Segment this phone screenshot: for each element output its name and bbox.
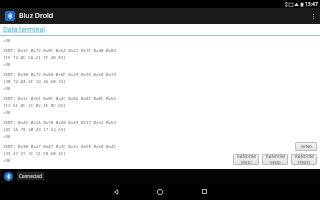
staticText: Connected (19, 173, 42, 179)
staticText: SENT: 0x30 0x72 0x04 0x6F 0x19 0x36 0x60… (3, 72, 117, 78)
staticText: [30 72 04 6F 19 36 60 73] (3, 79, 66, 85)
staticText: (TEXT) (298, 160, 311, 165)
staticText: =OK (3, 110, 11, 116)
staticText: SENT: 0x11 0x61 0x0C 0x2C 0x02 0x4F 0x0C… (3, 96, 117, 102)
staticText: [1F 72 0C 5A 21 7F 4B 03] (3, 55, 66, 61)
staticText: [11 61 0C 2C 02 4F 0C 65] (3, 103, 66, 109)
staticText: =OK (3, 134, 11, 140)
staticText: =OK (3, 158, 11, 164)
button[interactable]: Home (148, 183, 172, 200)
staticText: RANDOM (266, 154, 285, 160)
staticText: Bluz Droid (19, 11, 53, 21)
button[interactable]: Data terminal (3, 25, 45, 34)
staticText: (HEX) (270, 160, 281, 165)
staticText: (DEC) (241, 160, 252, 165)
staticText: SEND (301, 144, 312, 150)
button[interactable]: Connected (17, 172, 44, 180)
staticText: =OK (3, 86, 11, 92)
button[interactable]: Recent apps (192, 183, 216, 200)
staticText: =OK (3, 38, 11, 44)
staticText: =OK (3, 62, 11, 68)
button[interactable]: More options (306, 8, 320, 24)
button[interactable]: Bluetooth status (4, 172, 13, 181)
button[interactable]: RANDOM (262, 154, 288, 165)
staticText: RANDOM (295, 154, 314, 160)
staticText: [39 27 47 3C 11 58 60 4C] (3, 151, 66, 157)
button[interactable]: RANDOM (233, 154, 259, 165)
staticText: [45 1A 78 20 49 17 62 63] (3, 127, 66, 133)
button[interactable]: App icon (5, 11, 15, 21)
staticText: RANDOM (237, 154, 256, 160)
staticText: SENT: 0x30 0x27 0x47 0x3C 0x11 0x58 0x60… (3, 144, 117, 150)
staticText: SENT: 0x45 0x1A 0x78 0x20 0x49 0x17 0x62… (3, 120, 117, 126)
button[interactable]: RANDOM (291, 154, 317, 165)
staticText: SENT: 0x1F 0x72 0x0C 0x5A 0x21 0x7F 0x4B… (3, 48, 117, 54)
button[interactable]: Back (104, 183, 128, 200)
staticText: Data terminal (3, 25, 45, 34)
button[interactable]: SEND (295, 142, 317, 151)
staticText: 13:47 (305, 1, 318, 8)
